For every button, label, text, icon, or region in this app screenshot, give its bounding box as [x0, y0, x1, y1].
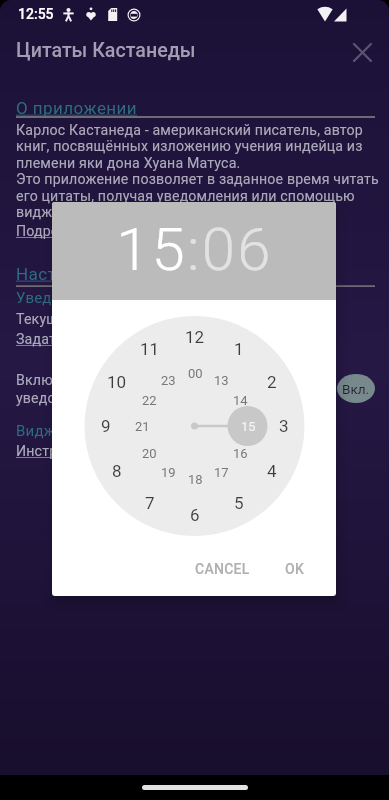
staticText: 21: [135, 419, 150, 434]
staticText: 11: [140, 339, 160, 359]
staticText: 7: [145, 493, 155, 513]
button[interactable]: Задать время...: [16, 322, 122, 356]
button[interactable]: [348, 38, 376, 66]
staticText: Виджет: [16, 422, 71, 440]
staticText: 6: [190, 505, 200, 525]
staticText: 19: [161, 465, 176, 480]
staticText: 20: [142, 446, 157, 461]
staticText: 18: [188, 472, 203, 487]
staticText: Вкл.: [342, 381, 370, 397]
staticText: 13: [214, 373, 229, 388]
staticText: 4: [267, 461, 277, 481]
staticText: племени яки дона Хуана Матуса.: [16, 155, 241, 172]
button[interactable]: Подробнее...: [16, 214, 103, 248]
staticText: OK: [285, 561, 304, 577]
staticText: 22: [142, 393, 157, 408]
staticText: книг, посвящённых изложению учения индей…: [16, 138, 363, 155]
staticText: 9: [101, 416, 111, 436]
staticText: 17: [214, 465, 229, 480]
staticText: Уведомления: [16, 289, 115, 307]
staticText: 00: [188, 366, 203, 381]
staticText: 23: [161, 373, 176, 388]
button[interactable]: OK: [274, 554, 314, 584]
staticText: 12: [185, 327, 205, 347]
staticText: Настройки: [16, 264, 107, 284]
staticText: Цитаты Кастанеды: [16, 39, 196, 62]
staticText: Задать время...: [16, 331, 122, 348]
staticText: 10: [107, 372, 127, 392]
staticText: 15:06: [116, 214, 273, 284]
staticText: Подробнее...: [16, 223, 103, 240]
button[interactable]: CANCEL: [190, 554, 254, 584]
button[interactable]: Вкл.: [337, 374, 375, 403]
staticText: 12:55: [18, 6, 54, 22]
staticText: 16: [233, 446, 248, 461]
staticText: уведомлений в нужное время.: [16, 390, 224, 407]
staticText: 8: [112, 461, 122, 481]
staticText: 3: [279, 416, 289, 436]
button[interactable]: Инструкция...: [16, 434, 109, 468]
staticText: его цитаты, получая уведомления или спом…: [16, 188, 355, 205]
staticText: Карлос Кастанеда - американский писатель…: [16, 122, 363, 139]
staticText: Это приложение позволяет в заданное врем…: [16, 171, 379, 188]
staticText: CANCEL: [195, 561, 250, 577]
staticText: 1: [234, 339, 244, 359]
staticText: Включить или отключить показ: [16, 372, 234, 389]
staticText: виджета.: [16, 204, 79, 221]
staticText: 14: [233, 393, 248, 408]
staticText: Текущее время уведомления: 15:06: [16, 311, 258, 328]
staticText: 5: [234, 493, 244, 513]
staticText: 2: [267, 372, 277, 392]
staticText: О приложении: [16, 98, 138, 118]
staticText: 15: [241, 419, 256, 434]
staticText: Инструкция...: [16, 443, 109, 460]
